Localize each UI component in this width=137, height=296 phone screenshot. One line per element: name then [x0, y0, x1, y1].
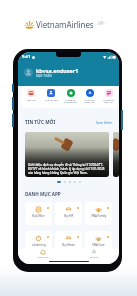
button[interactable]: kbvsa.enduser1 — [24, 67, 119, 78]
staticText: VietnamAirlines — [36, 19, 94, 30]
staticText: SkyOffice — [32, 214, 45, 218]
staticText: Xem thêm — [96, 120, 113, 125]
staticText: 9:41 — [22, 54, 31, 60]
button[interactable]: Thông báo mới của VNA — [113, 132, 119, 177]
button[interactable]: SkyOffice — [25, 202, 52, 225]
button[interactable]: eLearning — [25, 231, 52, 254]
staticText: Hỗ trợ và phản hồi — [84, 98, 95, 104]
staticText: TIN TỨC MỚI — [25, 119, 56, 125]
staticText: Sky News — [62, 243, 75, 247]
staticText: Trang chủ — [37, 255, 49, 258]
staticText: Giới thiệu dịch vụ chuyển đi và Thông tư… — [28, 163, 106, 175]
button[interactable]: VNA Family — [85, 202, 112, 225]
staticText: DANH MỤC APP — [25, 191, 61, 197]
button[interactable]: Trang chủ — [18, 248, 68, 259]
staticText: Cá nhân — [89, 255, 99, 258]
staticText: eLearning — [32, 243, 46, 247]
staticText: kbvsa.enduser1 — [36, 67, 79, 74]
button[interactable]: Giới thiệu dịch vụ chuyển đi và Thông tư… — [25, 132, 109, 177]
button[interactable]: Cá nhân — [68, 248, 119, 259]
button[interactable]: VNA Care — [85, 231, 112, 254]
staticText: Thông tin đặt chỗ — [103, 98, 114, 104]
button[interactable]: Thông tin đặt chỗ — [99, 89, 118, 108]
button[interactable]: Xem thêm — [96, 120, 113, 125]
staticText: Thẻ lên tàu — [45, 98, 58, 101]
staticText: VNA Family — [91, 214, 107, 218]
staticText: Đặt chỗ — [27, 98, 36, 101]
staticText: Sky HR — [64, 214, 74, 218]
staticText: VNA Care — [92, 243, 105, 247]
button[interactable]: Sky HR — [55, 202, 82, 225]
button[interactable]: Sky News — [55, 231, 82, 254]
button[interactable]: Hỗ trợ và phản hồi — [80, 89, 99, 108]
button[interactable]: Thông tin chuyến bay — [61, 89, 80, 108]
button[interactable]: Thẻ lên tàu — [41, 89, 61, 108]
staticText: BẠN THÂN — [36, 74, 52, 78]
staticText: Thông tin chuyến bay — [64, 98, 77, 104]
button[interactable]: Đặt chỗ — [21, 89, 41, 108]
